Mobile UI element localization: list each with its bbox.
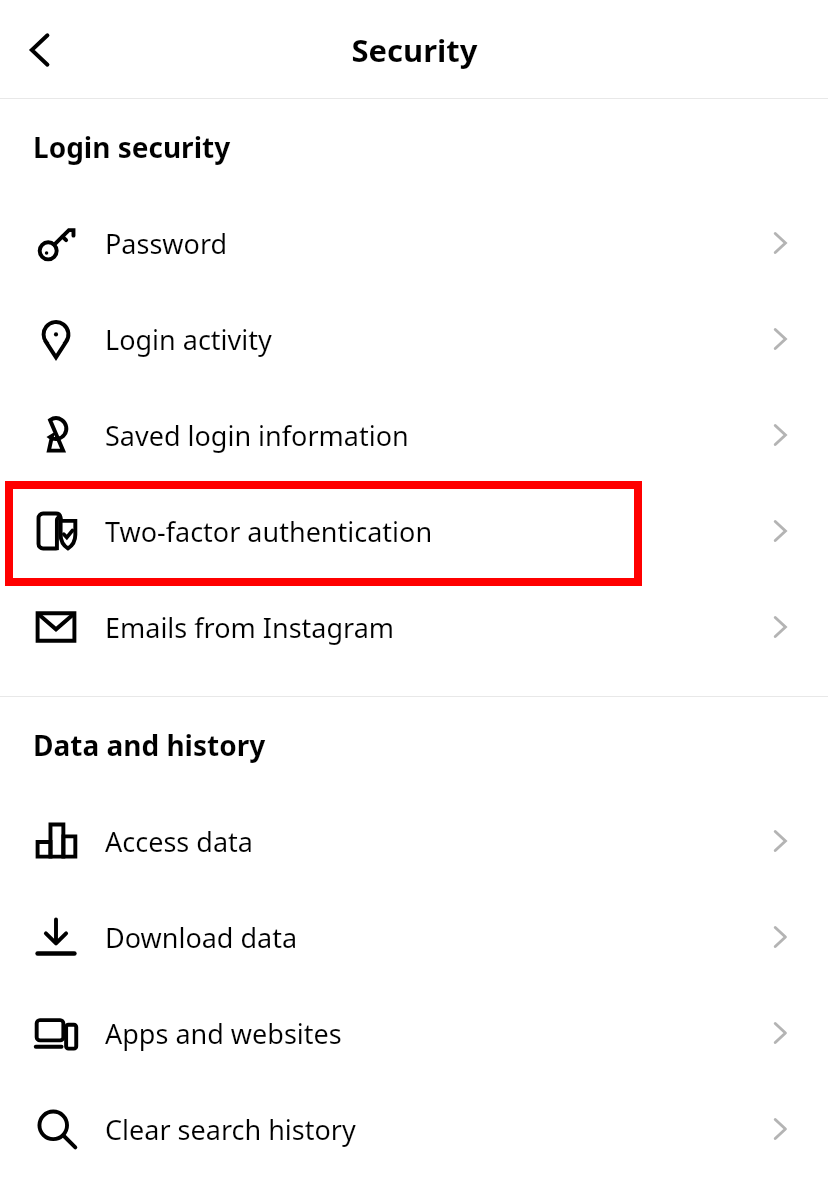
staticText: Security: [351, 29, 478, 71]
button[interactable]: Two-factor authentication: [0, 483, 828, 579]
staticText: Saved login information: [105, 417, 409, 454]
staticText: Emails from Instagram: [105, 609, 395, 646]
staticText: Two-factor authentication: [105, 513, 433, 550]
staticText: Download data: [105, 919, 298, 956]
button[interactable]: Back: [12, 21, 70, 79]
staticText: Password: [105, 225, 228, 262]
button[interactable]: Access data: [0, 793, 828, 889]
button[interactable]: Saved login information: [0, 387, 828, 483]
button[interactable]: Apps and websites: [0, 985, 828, 1081]
button[interactable]: Password: [0, 195, 828, 291]
button[interactable]: Clear search history: [0, 1081, 828, 1177]
button[interactable]: Emails from Instagram: [0, 579, 828, 675]
staticText: Login security: [33, 128, 231, 166]
button[interactable]: Download data: [0, 889, 828, 985]
staticText: Access data: [105, 823, 253, 860]
staticText: Login activity: [105, 321, 272, 358]
staticText: Clear search history: [105, 1111, 356, 1148]
staticText: Apps and websites: [105, 1015, 342, 1052]
staticText: Data and history: [33, 726, 266, 764]
button[interactable]: Login activity: [0, 291, 828, 387]
